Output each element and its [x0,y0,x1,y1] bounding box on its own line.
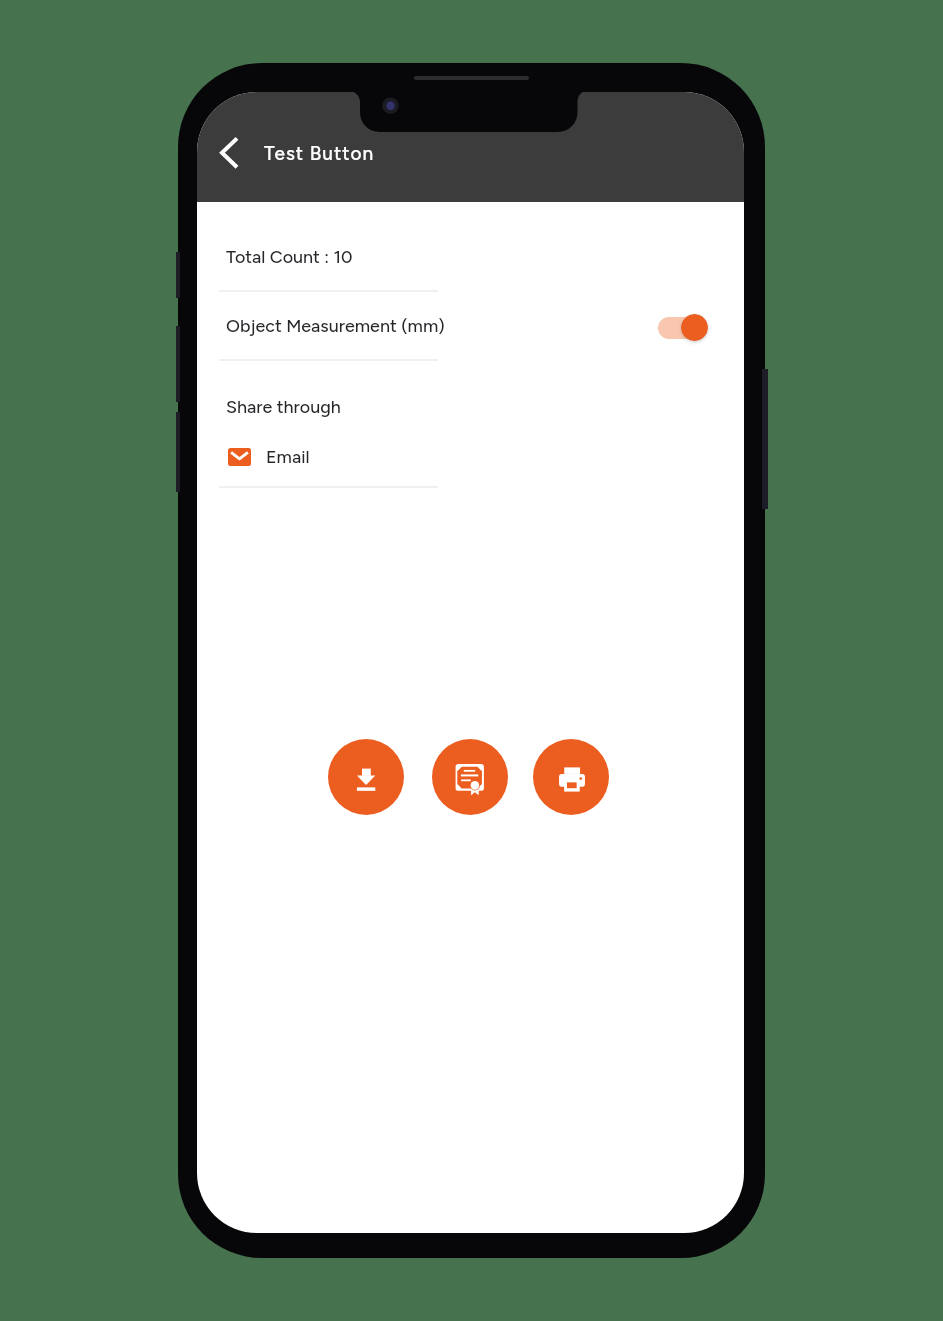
staticText: Total Count : 10 [226,246,353,267]
button[interactable]: Back [210,128,258,176]
button[interactable]: Print [533,739,609,815]
staticText: Email [266,446,310,467]
staticText: Share through [226,396,341,417]
staticText: Test Button [264,142,375,165]
button[interactable]: Object measurement toggle [649,307,713,349]
staticText: Object Measurement (mm) [226,315,445,336]
button[interactable]: Email [224,440,344,473]
button[interactable]: Certificate [432,739,508,815]
button[interactable]: Download [328,739,404,815]
